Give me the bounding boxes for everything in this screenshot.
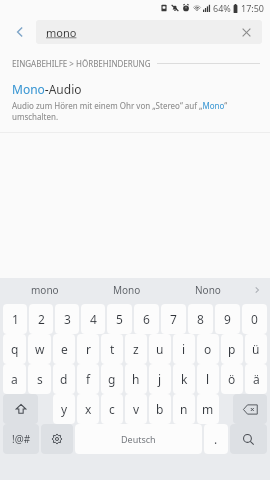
button[interactable]: i (173, 334, 195, 364)
staticText: Mono (113, 283, 141, 297)
staticText: b (156, 401, 164, 417)
staticText: mono (46, 25, 77, 40)
button[interactable]: 2 (29, 304, 53, 334)
staticText: ö (228, 371, 236, 387)
button[interactable]: k (173, 364, 195, 394)
button[interactable]: Einstellungen (41, 424, 73, 454)
button[interactable]: . (204, 424, 228, 454)
button[interactable]: ü (245, 334, 267, 364)
staticText: g (108, 371, 116, 387)
staticText: 7 (170, 311, 177, 327)
button[interactable]: mono (4, 278, 86, 302)
button[interactable]: e (53, 334, 75, 364)
button[interactable]: 6 (134, 304, 159, 334)
staticText: l (206, 371, 210, 387)
staticText: m (202, 401, 214, 417)
button[interactable]: mono (36, 20, 262, 44)
button[interactable]: w (28, 334, 51, 364)
staticText: d (60, 371, 68, 387)
staticText: h (132, 371, 140, 387)
staticText: t (110, 341, 115, 357)
button[interactable]: d (53, 364, 75, 394)
button[interactable]: Suchen (230, 424, 267, 454)
staticText: EINGABEHILFE > HÖRBEHINDERUNG (12, 58, 151, 69)
staticText: Mono-Audio (12, 81, 82, 97)
staticText: 1 (12, 311, 19, 327)
button[interactable]: l (197, 364, 219, 394)
staticText: p (228, 341, 236, 357)
staticText: w (35, 341, 45, 357)
button[interactable]: o (197, 334, 219, 364)
button[interactable]: Deutsch (75, 424, 202, 454)
staticText: 64% (213, 2, 231, 14)
button[interactable]: b (149, 394, 171, 424)
staticText: ä (253, 371, 260, 387)
staticText: j (158, 371, 162, 387)
button[interactable]: x (77, 394, 99, 424)
staticText: r (86, 341, 91, 357)
button[interactable]: c (101, 394, 123, 424)
staticText: v (133, 401, 140, 417)
staticText: q (11, 341, 19, 357)
staticText: f (86, 371, 91, 387)
staticText: u (156, 341, 164, 357)
staticText: 5 (116, 311, 123, 327)
button[interactable]: Rücktaste (233, 394, 267, 424)
button[interactable]: z (125, 334, 147, 364)
staticText: i (182, 341, 186, 357)
button[interactable]: Löschen (236, 22, 256, 42)
button[interactable]: s (28, 364, 51, 394)
button[interactable]: Umschalt (3, 394, 38, 424)
staticText: Nono (195, 283, 221, 297)
button[interactable]: a (3, 364, 26, 394)
button[interactable]: t (101, 334, 123, 364)
button[interactable]: p (221, 334, 243, 364)
button[interactable]: u (149, 334, 171, 364)
staticText: mono (31, 283, 59, 297)
button[interactable]: f (77, 364, 99, 394)
staticText: e (61, 341, 68, 357)
button[interactable]: Mono-Audio (0, 79, 270, 128)
staticText: c (109, 401, 115, 417)
button[interactable]: 4 (81, 304, 105, 334)
staticText: a (11, 371, 18, 387)
button[interactable]: ä (245, 364, 267, 394)
staticText: !@# (12, 432, 31, 446)
button[interactable]: v (125, 394, 147, 424)
staticText: x (85, 401, 92, 417)
button[interactable]: 7 (161, 304, 186, 334)
staticText: y (61, 401, 68, 417)
staticText: 6 (143, 311, 150, 327)
staticText: 9 (224, 311, 231, 327)
button[interactable]: Weitere Vorschläge (248, 278, 266, 302)
staticText: 8 (197, 311, 204, 327)
staticText: Audio zum Hören mit einem Ohr von „Stere… (12, 100, 260, 122)
staticText: . (214, 431, 218, 447)
button[interactable]: 9 (215, 304, 240, 334)
staticText: Deutsch (121, 433, 156, 445)
button[interactable]: h (125, 364, 147, 394)
button[interactable]: r (77, 334, 99, 364)
button[interactable]: !@# (3, 424, 39, 454)
staticText: 4 (90, 311, 97, 327)
button[interactable]: 5 (107, 304, 132, 334)
button[interactable]: 1 (3, 304, 27, 334)
button[interactable]: Mono (86, 278, 167, 302)
button[interactable]: g (101, 364, 123, 394)
staticText: o (204, 341, 212, 357)
button[interactable]: Nono (167, 278, 248, 302)
button[interactable]: j (149, 364, 171, 394)
staticText: ü (252, 341, 260, 357)
button[interactable]: Zurück (8, 20, 32, 44)
button[interactable]: 8 (188, 304, 213, 334)
button[interactable]: y (53, 394, 75, 424)
button[interactable]: 3 (55, 304, 79, 334)
button[interactable]: n (173, 394, 195, 424)
button[interactable]: 0 (242, 304, 267, 334)
button[interactable]: m (197, 394, 219, 424)
staticText: z (133, 341, 139, 357)
button[interactable]: ö (221, 364, 243, 394)
staticText: s (37, 371, 43, 387)
staticText: 17:50 (241, 2, 265, 14)
button[interactable]: q (3, 334, 26, 364)
